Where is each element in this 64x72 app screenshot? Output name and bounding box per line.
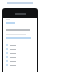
button[interactable] <box>2 8 38 18</box>
button[interactable] <box>6 47 37 51</box>
button[interactable] <box>6 43 37 47</box>
button[interactable] <box>6 63 37 67</box>
button[interactable] <box>6 51 37 55</box>
button[interactable] <box>6 55 37 59</box>
button[interactable] <box>6 59 37 63</box>
